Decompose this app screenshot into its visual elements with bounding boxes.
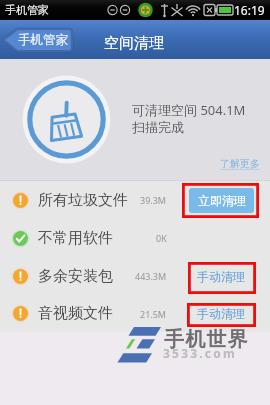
button[interactable]: 多余安装包 bbox=[0, 257, 270, 295]
staticText: 手机管家 bbox=[18, 32, 68, 48]
staticText: 所有垃圾文件 bbox=[38, 191, 128, 210]
staticText: 可清理空间 504.1M bbox=[132, 101, 246, 119]
staticText: 16:19 bbox=[234, 2, 265, 18]
staticText: 不常用软件 bbox=[38, 229, 113, 248]
button[interactable]: 了解更多 bbox=[220, 157, 260, 170]
staticText: 立即清理 bbox=[198, 193, 246, 208]
staticText: 手动清理 bbox=[197, 269, 245, 284]
staticText: 39.3M bbox=[140, 194, 167, 206]
staticText: 0K bbox=[156, 232, 167, 244]
button[interactable]: 所有垃圾文件 bbox=[0, 181, 270, 219]
staticText: 音视频文件 bbox=[38, 304, 113, 323]
staticText: 手机管家 bbox=[5, 3, 49, 17]
button[interactable]: 音视频文件 bbox=[0, 295, 270, 332]
staticText: 多余安装包 bbox=[38, 267, 113, 286]
button[interactable]: 手动清理 bbox=[197, 269, 245, 284]
staticText: 3533.com bbox=[163, 345, 237, 361]
button[interactable]: 不常用软件 bbox=[0, 219, 270, 257]
staticText: 空间清理 bbox=[104, 34, 164, 53]
staticText: 443.3M bbox=[135, 270, 167, 282]
button[interactable]: 返回 手机管家 bbox=[2, 28, 73, 52]
staticText: 手机世界 bbox=[164, 327, 249, 352]
staticText: 手动清理 bbox=[197, 306, 245, 321]
staticText: 21.5M bbox=[140, 308, 167, 320]
button[interactable]: 立即清理 bbox=[189, 188, 254, 213]
button[interactable]: 手动清理 bbox=[197, 306, 245, 321]
staticText: 扫描完成 bbox=[132, 119, 184, 135]
